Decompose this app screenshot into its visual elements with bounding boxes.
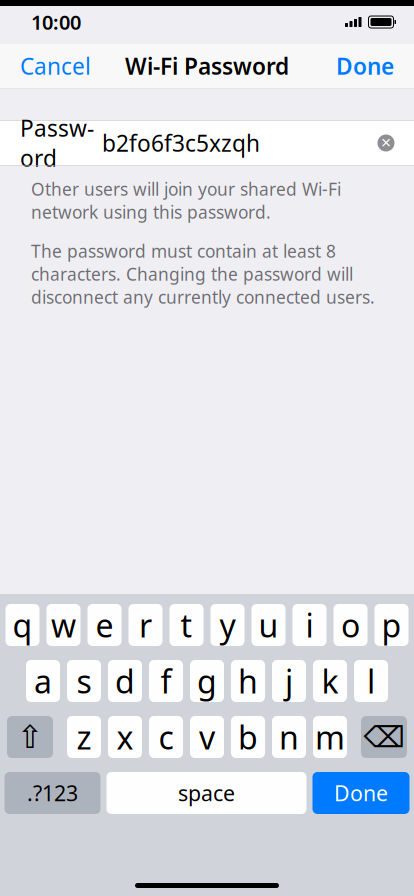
button[interactable]: Clear text (369, 121, 403, 165)
button[interactable]: t (169, 604, 203, 646)
staticText: ⇧ (16, 719, 43, 755)
button[interactable]: s (67, 660, 101, 702)
staticText: c (158, 716, 173, 758)
button[interactable]: o (333, 604, 367, 646)
staticText: y (219, 604, 235, 646)
staticText: o (341, 604, 360, 646)
staticText: .?123 (27, 779, 78, 807)
button[interactable]: e (87, 604, 121, 646)
staticText: Wi-Fi Password (125, 51, 289, 81)
staticText: z (76, 716, 91, 758)
button[interactable]: h (231, 660, 265, 702)
staticText: Other users will join your shared Wi-Fi … (31, 177, 341, 223)
staticText: u (258, 604, 278, 646)
staticText: k (321, 660, 338, 702)
button[interactable]: space (106, 772, 306, 814)
staticText: b2fo6f3c5xzqh (102, 128, 260, 158)
staticText: x (116, 716, 133, 758)
staticText: The password must contain at least 8 cha… (31, 239, 375, 309)
button[interactable]: r (128, 604, 162, 646)
button[interactable]: k (313, 660, 347, 702)
button[interactable]: .?123 (4, 772, 100, 814)
staticText: a (34, 660, 52, 702)
staticText: b (238, 716, 258, 758)
staticText: Cancel (20, 51, 91, 81)
button[interactable]: v (190, 716, 224, 758)
staticText: ⌫ (363, 720, 404, 754)
staticText: n (279, 716, 299, 758)
button[interactable]: a (26, 660, 60, 702)
button[interactable]: m (313, 716, 347, 758)
button[interactable]: p (374, 604, 408, 646)
staticText: r (139, 604, 152, 646)
staticText: w (51, 604, 76, 646)
button[interactable]: Delete (361, 716, 407, 758)
button[interactable]: n (272, 716, 306, 758)
staticText: h (238, 660, 258, 702)
staticText: space (178, 779, 235, 807)
staticText: Done (336, 51, 394, 81)
staticText: l (367, 660, 375, 702)
staticText: Password (20, 113, 94, 173)
button[interactable]: Shift (7, 716, 53, 758)
staticText: g (197, 660, 217, 702)
button[interactable]: q (5, 604, 39, 646)
button[interactable]: c (149, 716, 183, 758)
button[interactable]: d (108, 660, 142, 702)
staticText: d (115, 660, 135, 702)
button[interactable]: y (210, 604, 244, 646)
button[interactable]: x (108, 716, 142, 758)
staticText: q (12, 604, 32, 646)
staticText: p (381, 604, 401, 646)
button[interactable]: Done (312, 772, 409, 814)
button[interactable]: w (46, 604, 80, 646)
staticText: j (285, 660, 293, 702)
button[interactable]: z (67, 716, 101, 758)
button[interactable]: b (231, 716, 265, 758)
staticText: s (76, 660, 91, 702)
button[interactable]: l (354, 660, 388, 702)
button[interactable]: u (251, 604, 285, 646)
button[interactable]: i (292, 604, 326, 646)
staticText: 10:00 (31, 9, 81, 35)
button[interactable]: g (190, 660, 224, 702)
staticText: f (160, 660, 171, 702)
staticText: v (199, 716, 215, 758)
staticText: ✕ (380, 135, 391, 150)
button[interactable]: Done (328, 41, 402, 91)
button[interactable]: j (272, 660, 306, 702)
button[interactable]: f (149, 660, 183, 702)
staticText: e (95, 604, 113, 646)
staticText: m (315, 716, 345, 758)
staticText: t (180, 604, 192, 646)
staticText: i (305, 604, 313, 646)
staticText: Done (334, 779, 388, 807)
button[interactable]: Cancel (12, 41, 99, 91)
